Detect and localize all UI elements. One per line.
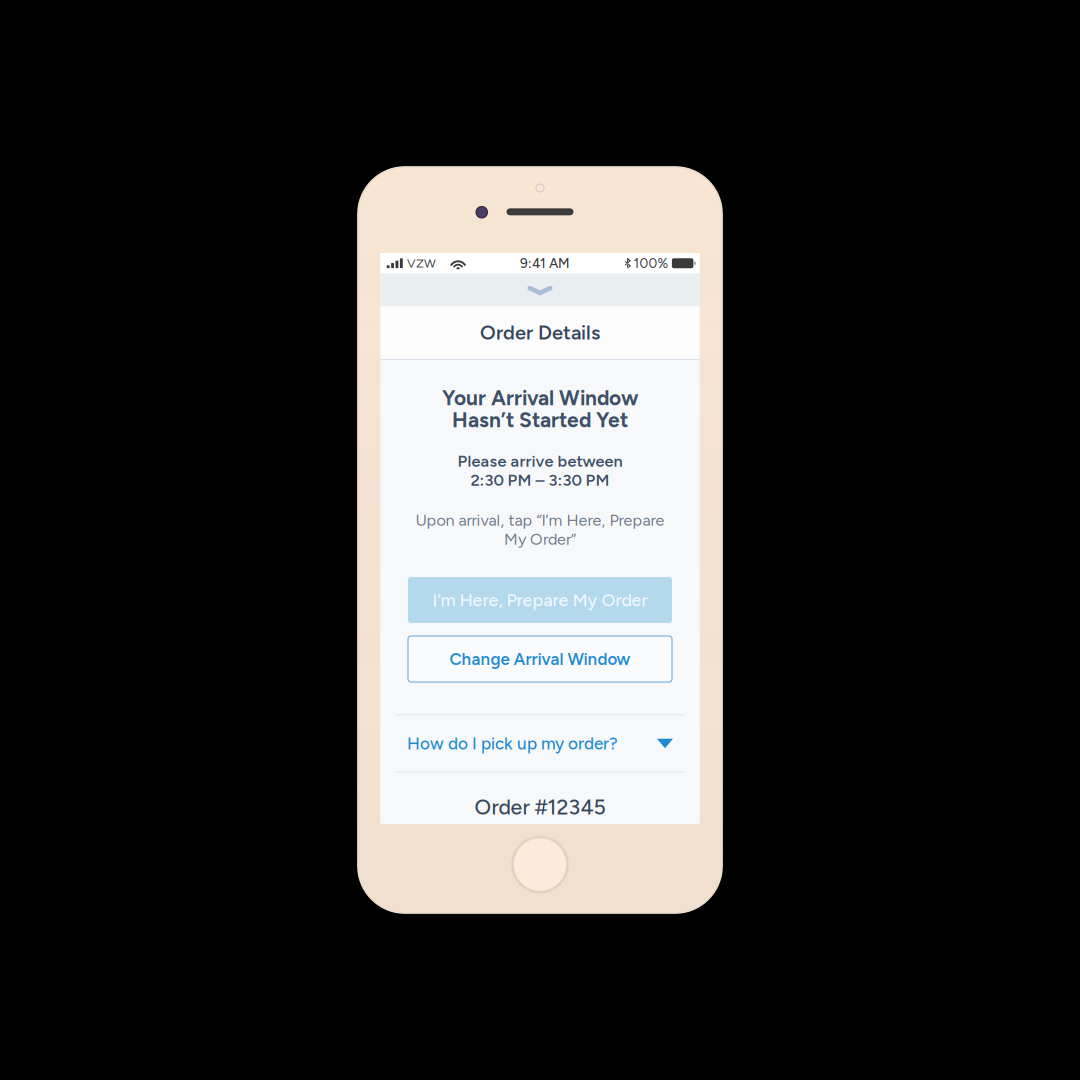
button[interactable]: I’m Here, Prepare My Order — [408, 577, 672, 623]
button[interactable]: Change Arrival Window — [408, 636, 672, 682]
staticText: 100% — [633, 255, 668, 271]
staticText: Your Arrival Window — [442, 385, 638, 410]
staticText: Order Details — [480, 320, 600, 344]
staticText: My Order” — [504, 529, 576, 549]
staticText: Change Arrival Window — [449, 649, 630, 669]
staticText: 2:30 PM – 3:30 PM — [470, 470, 609, 490]
button[interactable]: Dismiss order details — [380, 273, 699, 306]
staticText: Hasn’t Started Yet — [452, 407, 628, 432]
staticText: Please arrive between — [457, 451, 622, 471]
staticText: 9:41 AM — [520, 255, 570, 271]
staticText: Order #12345 — [474, 794, 605, 820]
staticText: How do I pick up my order? — [407, 733, 618, 754]
button[interactable]: How do I pick up my order? — [395, 715, 685, 772]
staticText: VZW — [407, 256, 436, 271]
staticText: Upon arrival, tap “I’m Here, Prepare — [415, 510, 664, 530]
staticText: I’m Here, Prepare My Order — [432, 589, 647, 611]
